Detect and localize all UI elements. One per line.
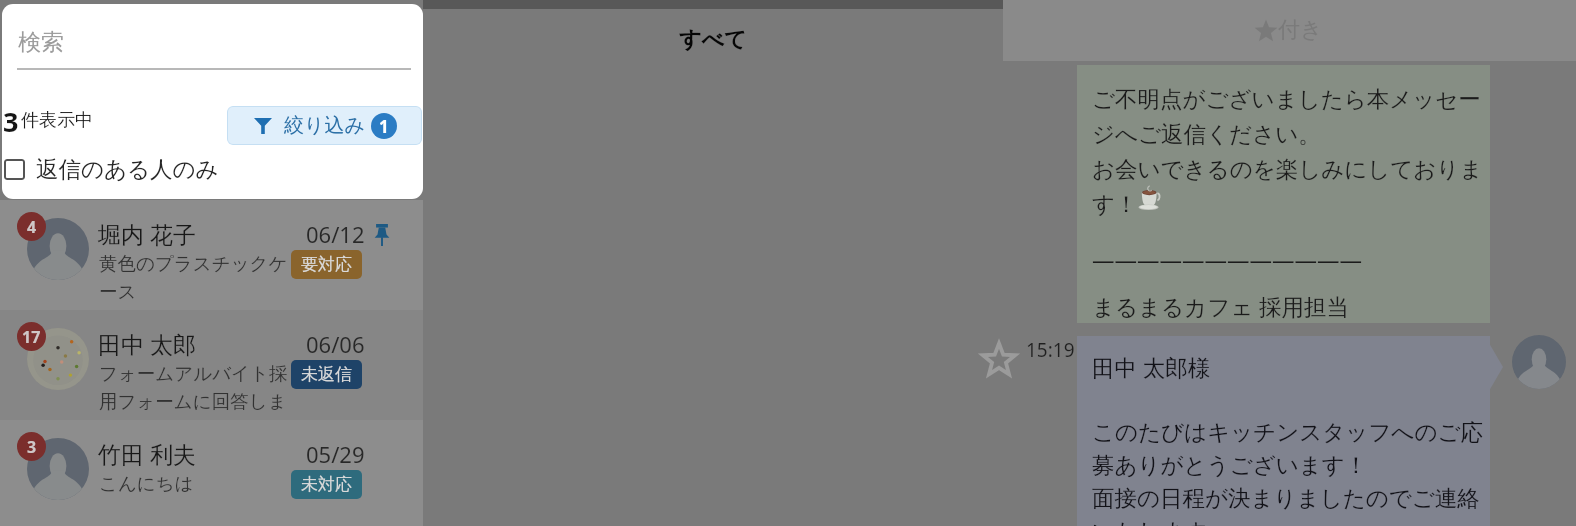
staticText: 件表示中 (21, 109, 93, 132)
staticText: 検索 (18, 28, 64, 57)
staticText: こんにちは (99, 472, 194, 495)
staticText: このたびはキッチンスタッフへのご応 (1092, 418, 1483, 446)
staticText: ジへご返信ください。 (1092, 120, 1321, 148)
staticText: 絞り込み (284, 113, 365, 138)
button[interactable]: 絞り込み (227, 106, 422, 145)
staticText: 06/06 (306, 329, 365, 359)
staticText: 田中 太郎 (98, 328, 196, 359)
button[interactable]: 4 (0, 200, 423, 310)
staticText: まるまるカフェ 採用担当 (1092, 291, 1350, 322)
staticText: 15:19 (1026, 337, 1075, 363)
staticText: 05/29 (306, 439, 365, 469)
staticText: お会いできるのを楽しみにしておりま (1092, 155, 1483, 183)
staticText: 黄色のプラスチックケ (99, 252, 288, 275)
staticText: ース (99, 280, 137, 303)
button[interactable]: Star message (982, 344, 1016, 377)
staticText: 堀内 花子 (98, 218, 196, 249)
staticText: ———————————— (1092, 244, 1363, 275)
staticText: 付き (1278, 16, 1323, 44)
staticText: 3 (3, 103, 19, 140)
staticText: す！ (1092, 190, 1138, 218)
staticText: いたします。 (1092, 517, 1230, 526)
other: Pinned (374, 224, 390, 246)
button[interactable]: 返信のある人のみ (2, 150, 232, 188)
staticText: 未返信 (301, 364, 352, 385)
staticText: フォームアルバイト採 (99, 362, 288, 385)
staticText: 返信のある人のみ (36, 155, 219, 183)
staticText: 1 (379, 115, 389, 138)
staticText: 要対応 (301, 254, 352, 275)
button[interactable]: 田中 太郎様 (1077, 336, 1490, 526)
staticText: 4 (27, 216, 37, 238)
staticText: すべて (679, 26, 747, 54)
staticText: 募ありがとうございます！ (1092, 451, 1368, 479)
staticText: 田中 太郎様 (1092, 352, 1211, 383)
button[interactable]: 17 (0, 310, 423, 420)
staticText: 3 (27, 436, 37, 458)
staticText: 用フォームに回答しま (99, 390, 287, 413)
staticText: 未対応 (301, 474, 352, 495)
staticText: 17 (22, 326, 41, 348)
staticText: ご不明点がございましたら本メッセー (1092, 85, 1481, 113)
staticText: 竹田 利夫 (98, 438, 196, 469)
button[interactable]: 3 (0, 420, 423, 526)
button[interactable]: ご不明点がございましたら本メッセー (1077, 65, 1490, 323)
staticText: 面接の日程が決まりましたのでご連絡 (1092, 484, 1480, 512)
staticText: 06/12 (306, 219, 365, 249)
